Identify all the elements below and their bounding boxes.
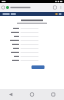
button[interactable]: Recent apps xyxy=(43,93,64,96)
button[interactable]: Back xyxy=(0,93,21,96)
button[interactable]: Reload xyxy=(2,6,5,9)
button[interactable]: Home xyxy=(21,93,43,96)
button[interactable]: Submit xyxy=(31,65,44,69)
button[interactable]: Tabs xyxy=(53,6,56,9)
button[interactable]: Menu xyxy=(59,5,62,9)
